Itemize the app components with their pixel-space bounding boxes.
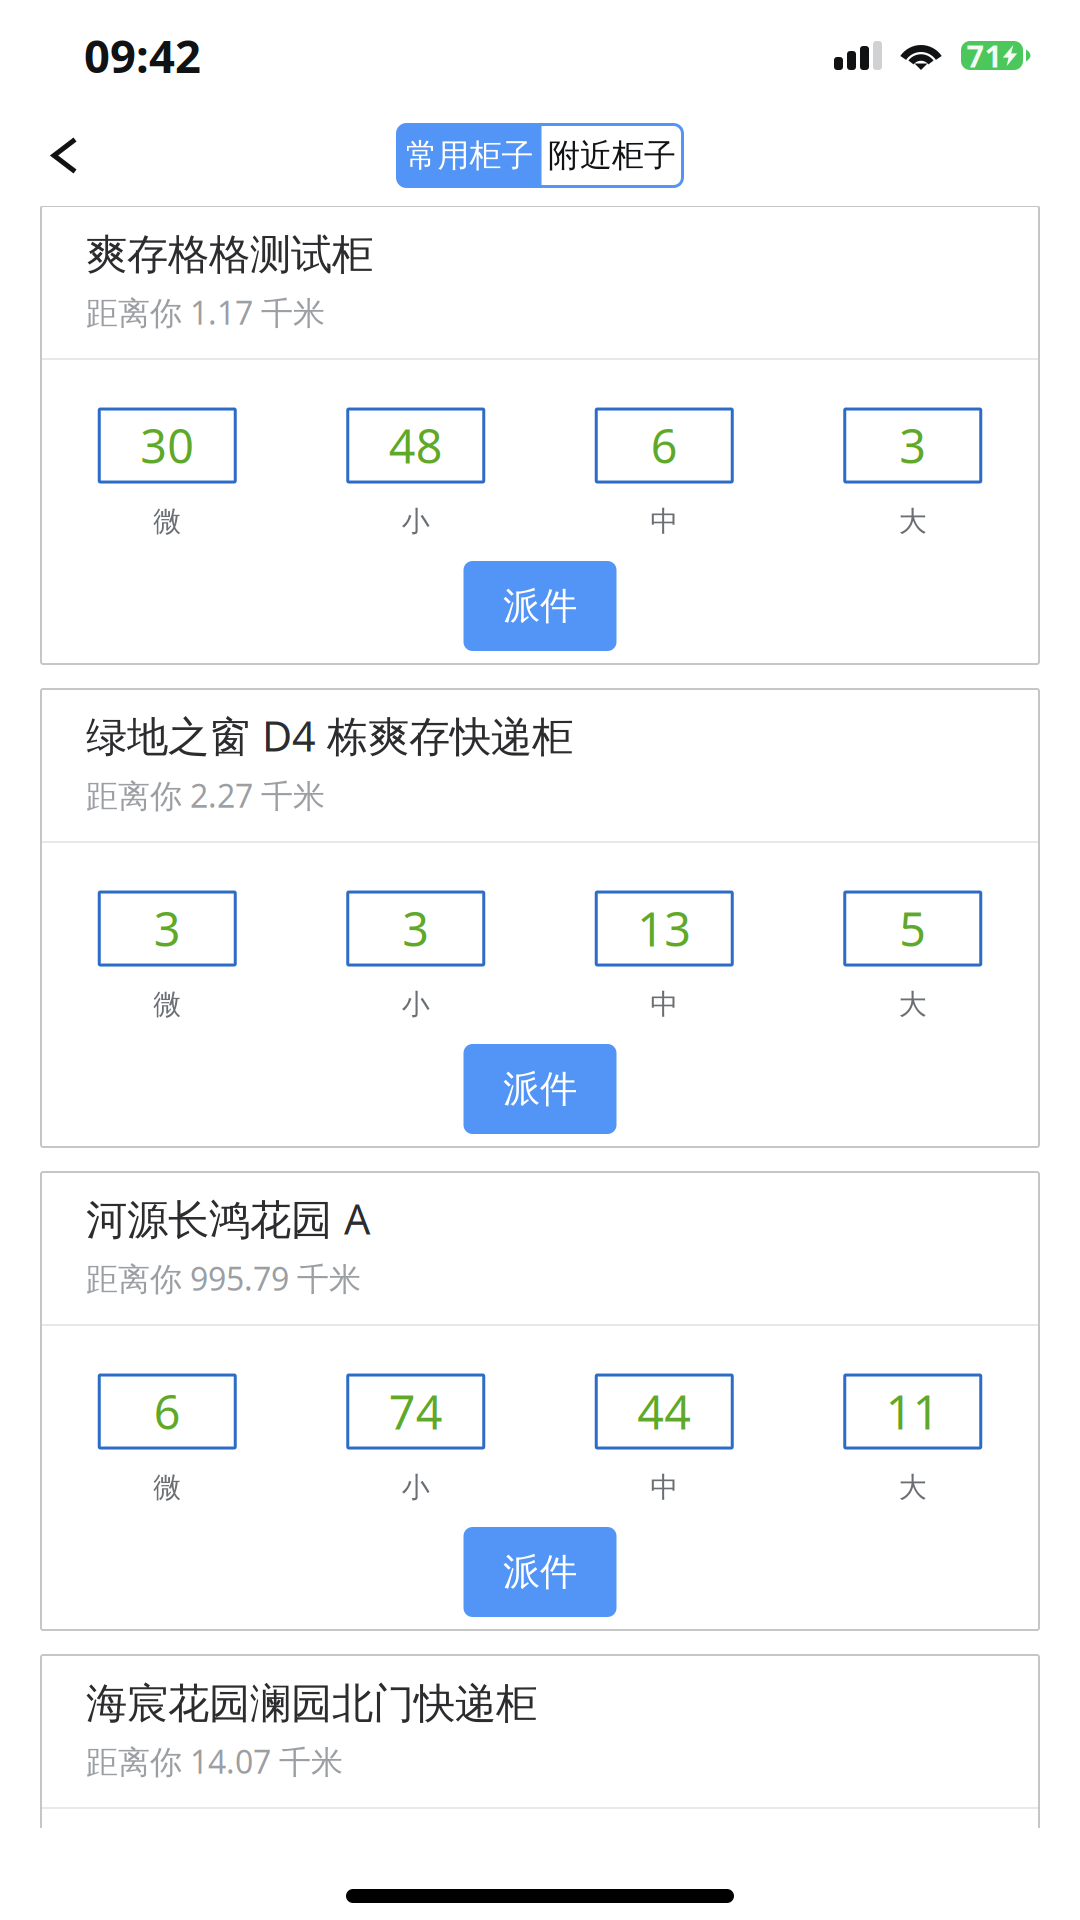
- staticText: 小: [402, 1470, 430, 1505]
- staticText: 大: [899, 504, 927, 539]
- button[interactable]: 派件: [463, 1527, 616, 1617]
- staticText: 距离你 995.79 千米: [86, 1257, 361, 1299]
- staticText: 微: [153, 504, 181, 539]
- staticText: 6: [651, 414, 678, 476]
- staticText: 派件: [503, 1549, 577, 1595]
- button[interactable]: 派件: [463, 1044, 616, 1134]
- staticText: 30: [140, 414, 194, 476]
- staticText: 绿地之窗 D4 栋爽存快递柜: [86, 708, 573, 763]
- staticText: 13: [637, 897, 691, 959]
- staticText: 大: [899, 987, 927, 1022]
- staticText: 中: [650, 1470, 678, 1505]
- staticText: 74: [389, 1380, 443, 1442]
- staticText: 09:42: [84, 25, 201, 86]
- staticText: 44: [637, 1380, 691, 1442]
- button[interactable]: 附近柜子: [541, 124, 682, 186]
- staticText: 3: [402, 897, 429, 959]
- button[interactable]: 派件: [463, 561, 616, 651]
- staticText: 微: [153, 987, 181, 1022]
- staticText: 3: [899, 414, 926, 476]
- staticText: 9: [402, 1863, 429, 1920]
- staticText: 距离你 2.27 千米: [86, 774, 325, 816]
- staticText: 海宸花园澜园北门快递柜: [86, 1678, 537, 1729]
- staticText: 距离你 14.07 千米: [86, 1740, 343, 1782]
- staticText: 爽存格格测试柜: [86, 229, 373, 280]
- button[interactable]: 常用柜子: [397, 124, 541, 186]
- staticText: 3: [154, 897, 181, 959]
- staticText: 48: [389, 414, 443, 476]
- staticText: 小: [402, 987, 430, 1022]
- staticText: 71: [966, 35, 1002, 76]
- staticText: 附近柜子: [548, 136, 676, 175]
- staticText: 派件: [503, 1066, 577, 1112]
- staticText: 微: [153, 1470, 181, 1505]
- staticText: 11: [886, 1380, 940, 1442]
- staticText: 中: [650, 504, 678, 539]
- staticText: 派件: [503, 583, 577, 629]
- staticText: 常用柜子: [405, 136, 533, 175]
- staticText: 4: [651, 1863, 678, 1920]
- staticText: 小: [402, 504, 430, 539]
- staticText: 河源长鸿花园 A: [86, 1191, 370, 1246]
- staticText: 6: [154, 1380, 181, 1442]
- staticText: 大: [899, 1470, 927, 1505]
- staticText: 距离你 1.17 千米: [86, 291, 325, 333]
- button[interactable]: Back: [0, 111, 119, 199]
- staticText: 5: [899, 897, 926, 959]
- staticText: 中: [650, 987, 678, 1022]
